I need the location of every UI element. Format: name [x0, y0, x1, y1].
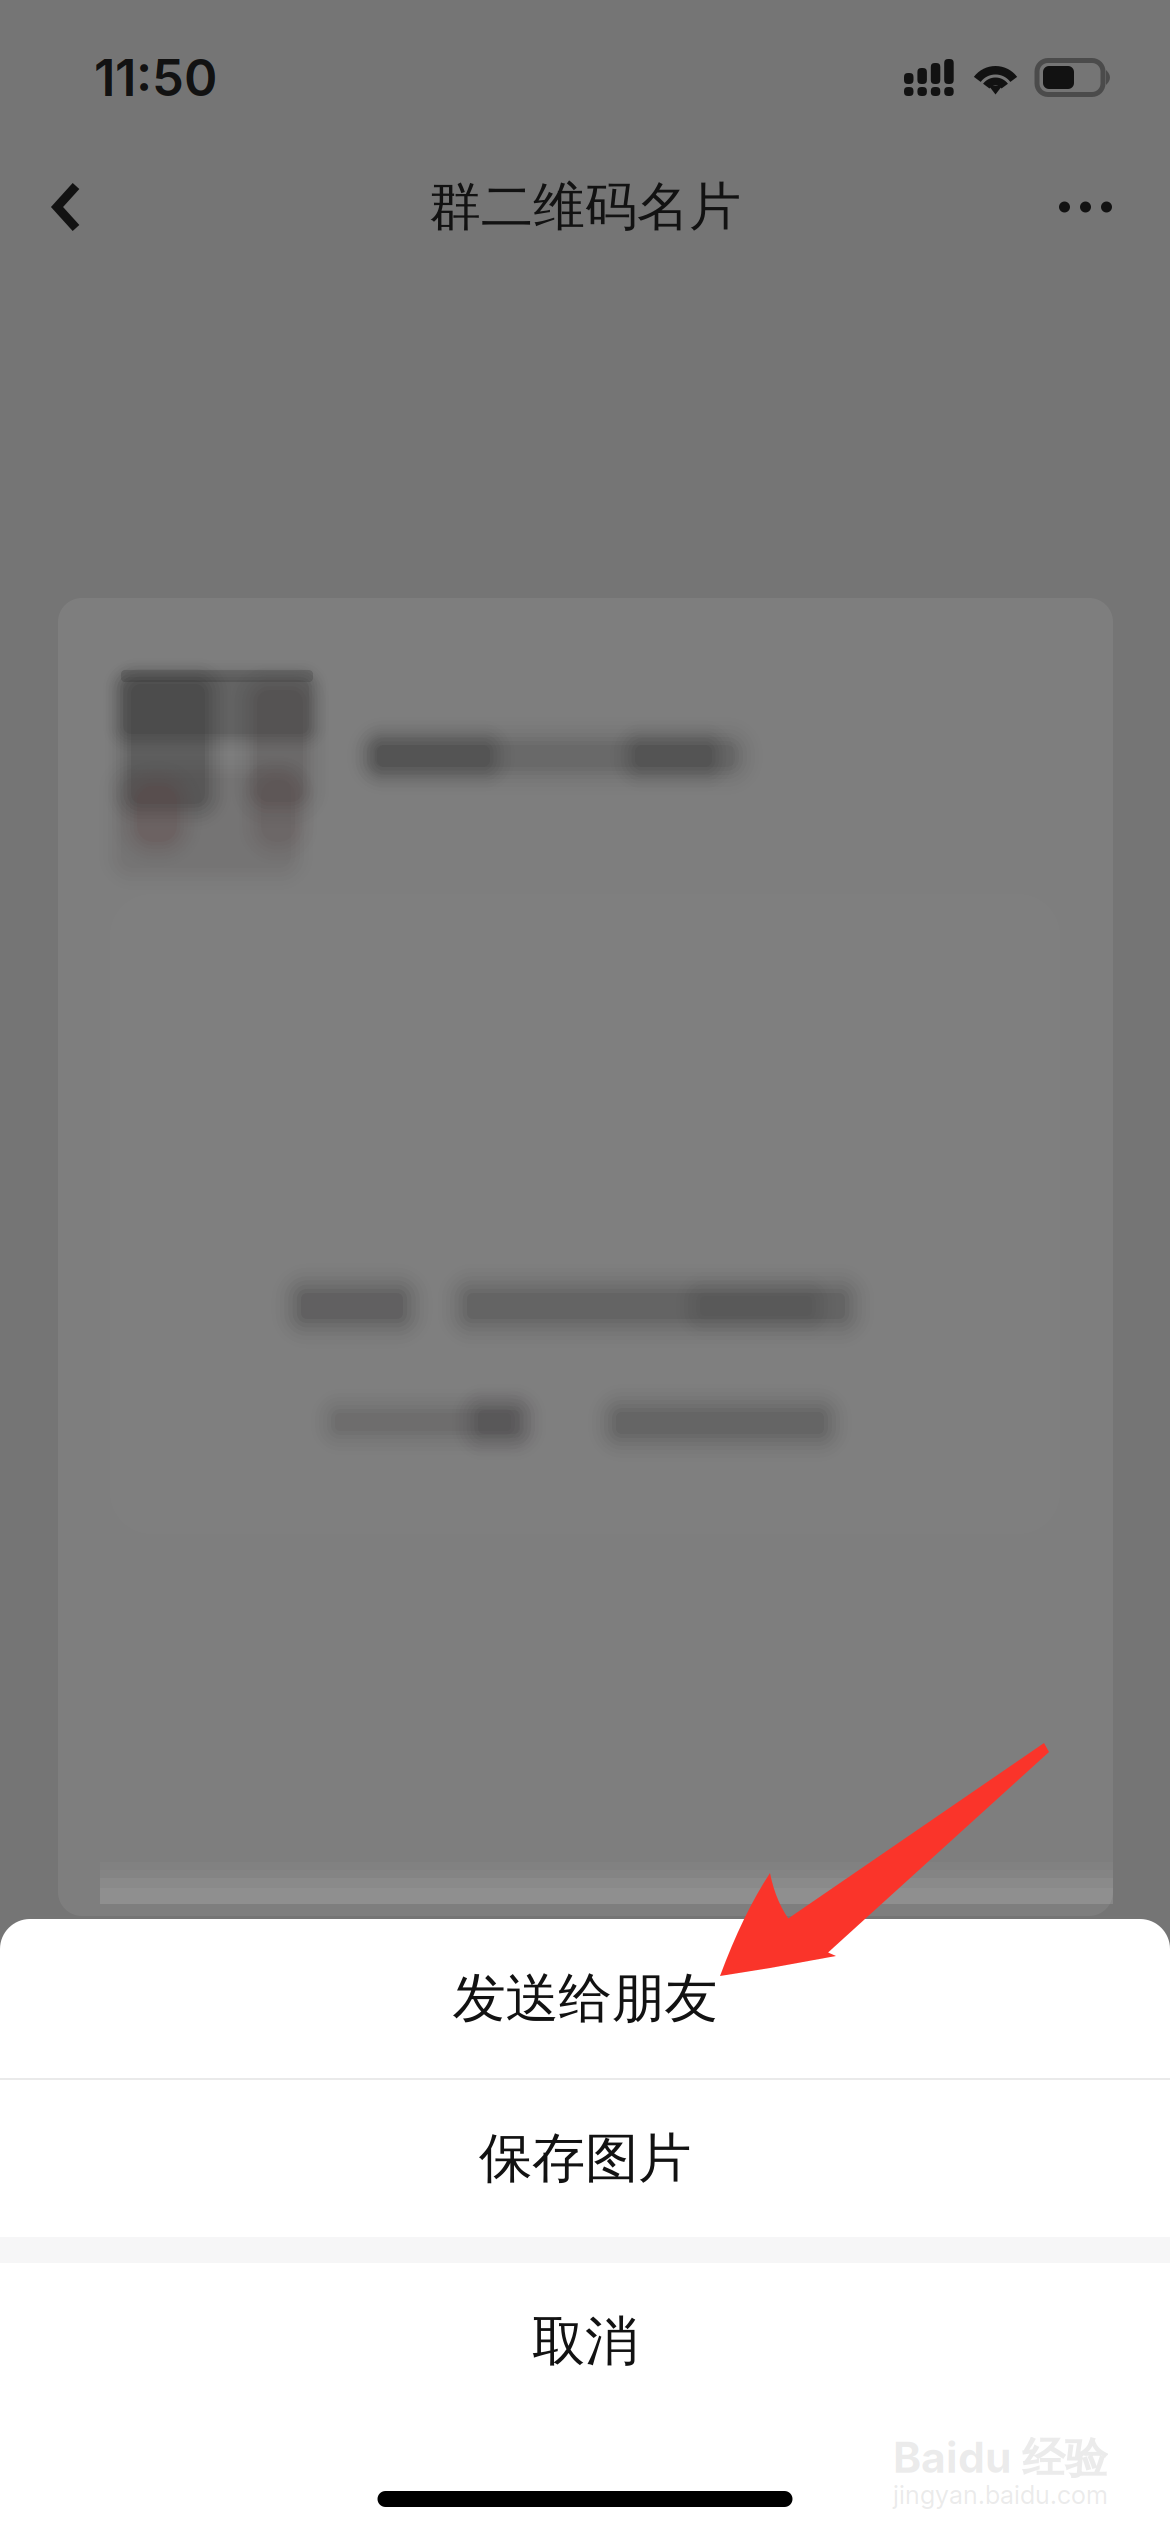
- button[interactable]: More options: [1030, 155, 1170, 259]
- button[interactable]: 保存图片: [0, 2080, 1170, 2237]
- staticText: Baidu 经验: [893, 2431, 1108, 2485]
- staticText: jingyan.baidu.com: [893, 2479, 1108, 2510]
- staticText: 取消: [532, 2308, 638, 2375]
- staticText: 保存图片: [479, 2125, 691, 2192]
- staticText: 11:50: [94, 47, 217, 108]
- staticText: 群二维码名片: [429, 174, 741, 240]
- button[interactable]: 发送给朋友: [0, 1919, 1170, 2078]
- button[interactable]: Back: [0, 155, 140, 259]
- button[interactable]: 取消: [0, 2263, 1170, 2420]
- staticText: 发送给朋友: [452, 1965, 717, 2032]
